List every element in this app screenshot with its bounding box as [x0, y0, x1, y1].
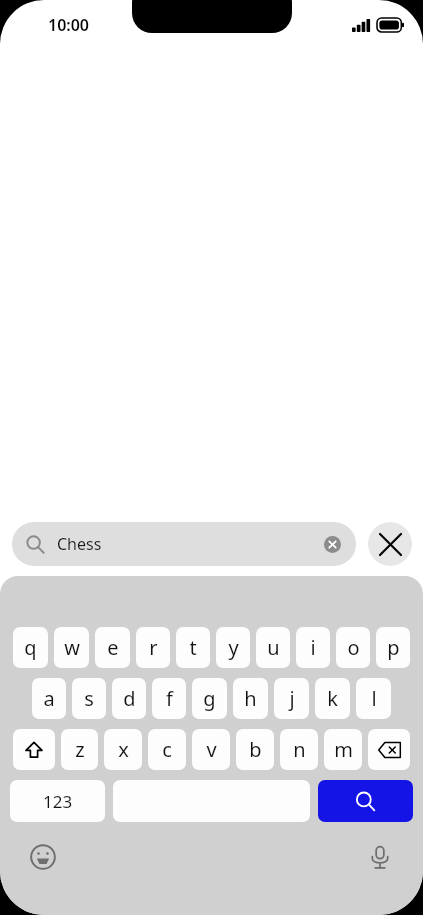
staticText: n [293, 736, 306, 763]
button[interactable]: a [32, 678, 66, 719]
button[interactable]: s [72, 678, 106, 719]
button[interactable]: Search [318, 780, 413, 822]
staticText: s [84, 685, 94, 712]
button[interactable]: Shift [13, 729, 55, 770]
staticText: t [189, 634, 197, 661]
staticText: e [107, 634, 119, 661]
button[interactable]: m [324, 729, 362, 770]
button[interactable]: q [13, 627, 48, 668]
button[interactable]: x [104, 729, 142, 770]
button[interactable]: b [236, 729, 274, 770]
button[interactable]: r [136, 627, 170, 668]
staticText: b [249, 736, 262, 763]
button[interactable]: w [54, 627, 89, 668]
staticText: d [123, 685, 136, 712]
button[interactable]: g [192, 678, 227, 719]
button[interactable]: 123 [10, 780, 105, 822]
staticText: r [149, 634, 158, 661]
staticText: l [371, 685, 377, 712]
staticText: h [244, 685, 257, 712]
button[interactable]: c [148, 729, 186, 770]
button[interactable]: Chess [12, 522, 356, 566]
staticText: g [203, 685, 216, 712]
button[interactable]: Emoji [26, 840, 60, 874]
button[interactable]: n [280, 729, 318, 770]
button[interactable]: Clear search text [318, 530, 346, 558]
staticText: w [64, 634, 80, 661]
staticText: p [387, 634, 400, 661]
staticText: u [267, 634, 280, 661]
staticText: m [334, 736, 353, 763]
button[interactable]: d [112, 678, 146, 719]
button[interactable]: z [61, 729, 98, 770]
button[interactable]: o [336, 627, 370, 668]
button[interactable]: k [315, 678, 350, 719]
staticText: c [162, 736, 172, 763]
button[interactable]: y [216, 627, 250, 668]
staticText: a [43, 685, 55, 712]
button[interactable]: t [176, 627, 210, 668]
staticText: 10:00 [48, 14, 90, 36]
staticText: o [347, 634, 360, 661]
button[interactable]: h [233, 678, 268, 719]
button[interactable]: e [95, 627, 130, 668]
staticText: q [24, 634, 37, 661]
button[interactable]: l [356, 678, 391, 719]
staticText: j [289, 685, 295, 712]
staticText: y [228, 634, 239, 661]
staticText: f [166, 685, 173, 712]
button[interactable]: Close search [368, 522, 412, 566]
button[interactable]: Space [113, 780, 310, 822]
staticText: i [310, 634, 316, 661]
staticText: 123 [43, 790, 73, 813]
staticText: Chess [57, 533, 318, 555]
button[interactable]: Voice input [363, 840, 397, 874]
button[interactable]: f [152, 678, 186, 719]
staticText: k [327, 685, 338, 712]
button[interactable]: i [296, 627, 330, 668]
staticText: x [118, 736, 129, 763]
button[interactable]: j [274, 678, 309, 719]
staticText: v [206, 736, 217, 763]
button[interactable]: Backspace [368, 729, 410, 770]
button[interactable]: v [192, 729, 230, 770]
button[interactable]: p [376, 627, 410, 668]
button[interactable]: u [256, 627, 290, 668]
staticText: z [75, 736, 85, 763]
